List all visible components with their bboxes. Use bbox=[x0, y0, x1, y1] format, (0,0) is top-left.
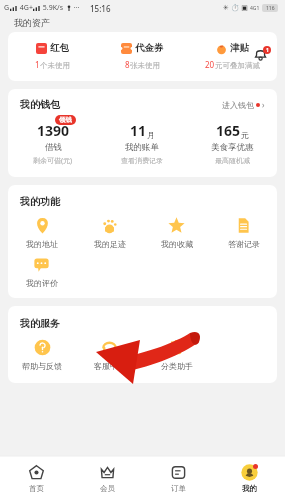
button[interactable]: 我的 bbox=[214, 464, 285, 493]
staticText: 客服中心 bbox=[94, 361, 126, 371]
staticText: 借钱 bbox=[45, 142, 62, 153]
staticText: 分类助手 bbox=[161, 361, 193, 371]
button[interactable]: 我的足迹 bbox=[76, 217, 143, 249]
staticText: 美食享优惠 bbox=[211, 142, 254, 153]
staticText: 5.9K/s bbox=[41, 3, 63, 13]
staticText: ✳ ⏱ ▣ bbox=[223, 3, 248, 13]
button[interactable]: 11 bbox=[97, 117, 187, 165]
staticText: 1390 bbox=[37, 121, 70, 140]
button[interactable]: 帮助与反馈 bbox=[8, 339, 76, 371]
staticText: 帮助与反馈 bbox=[22, 361, 62, 371]
staticText: 我的功能 bbox=[20, 195, 60, 208]
button[interactable]: 我的收藏 bbox=[143, 217, 210, 249]
staticText: 4G+ bbox=[18, 3, 33, 13]
staticText: G bbox=[4, 3, 10, 13]
staticText: 我的服务 bbox=[20, 317, 60, 330]
staticText: 津贴 bbox=[230, 42, 249, 54]
staticText: 我的资产 bbox=[14, 17, 50, 28]
staticText: 代金券 bbox=[135, 42, 164, 54]
staticText: 我的 bbox=[242, 484, 257, 493]
staticText: 元可叠加满减 bbox=[215, 61, 260, 70]
staticText: 我的评价 bbox=[26, 278, 58, 288]
staticText: 8 bbox=[125, 59, 130, 70]
button[interactable]: 分类助手 bbox=[143, 339, 210, 371]
staticText: 最高随机减 bbox=[215, 156, 250, 165]
staticText: 进入钱包 bbox=[222, 100, 254, 110]
staticText: 我的账单 bbox=[125, 142, 159, 153]
staticText: 我的地址 bbox=[26, 239, 58, 249]
staticText: 我的足迹 bbox=[94, 239, 126, 249]
staticText: 查看消费记录 bbox=[121, 156, 163, 165]
button[interactable]: 订单 bbox=[143, 464, 214, 493]
staticText: 会员 bbox=[100, 484, 115, 493]
button[interactable]: 代金券 bbox=[97, 42, 187, 70]
button[interactable]: 客服中心 bbox=[76, 339, 143, 371]
button[interactable]: Notifications bbox=[253, 46, 271, 64]
button[interactable]: 我的评价 bbox=[8, 256, 75, 288]
staticText: 订单 bbox=[171, 484, 186, 493]
button[interactable]: 165 bbox=[187, 117, 277, 165]
staticText: 领钱 bbox=[59, 116, 72, 124]
staticText: 个未使用 bbox=[40, 61, 70, 70]
staticText: 15:16 bbox=[90, 3, 111, 14]
staticText: 答谢记录 bbox=[228, 239, 260, 249]
staticText: 4G1 bbox=[250, 5, 260, 12]
button[interactable]: 我的地址 bbox=[8, 217, 76, 249]
staticText: 我的钱包 bbox=[20, 98, 60, 111]
staticText: › bbox=[260, 99, 265, 110]
button[interactable]: 会员 bbox=[72, 464, 143, 493]
button[interactable]: 首页 bbox=[0, 464, 72, 493]
button[interactable]: 答谢记录 bbox=[210, 217, 277, 249]
staticText: 165 bbox=[216, 121, 241, 140]
staticText: 剩余可借(元) bbox=[33, 156, 73, 166]
staticText: 1 bbox=[35, 59, 40, 70]
button[interactable]: 红包 bbox=[8, 42, 97, 70]
staticText: 红包 bbox=[50, 42, 69, 54]
staticText: 元 bbox=[241, 130, 249, 140]
staticText: 20 bbox=[205, 59, 215, 70]
staticText: 张未使用 bbox=[130, 61, 160, 70]
button[interactable]: 津贴 bbox=[187, 42, 277, 70]
staticText: 月 bbox=[147, 130, 155, 140]
staticText: 我的收藏 bbox=[161, 239, 193, 249]
staticText: 首页 bbox=[29, 484, 44, 493]
staticText: 1 bbox=[266, 47, 269, 54]
button[interactable]: 1390 bbox=[8, 117, 97, 166]
staticText: 11 bbox=[130, 121, 147, 140]
button[interactable]: 进入钱包 bbox=[222, 99, 265, 110]
staticText: ··· bbox=[72, 3, 80, 13]
staticText: 116 bbox=[266, 5, 275, 12]
